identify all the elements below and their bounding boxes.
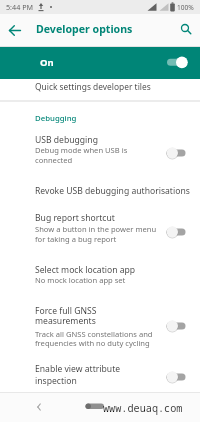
staticText: Force full GNSS measurements xyxy=(35,305,97,327)
staticText: Revoke USB debugging authorisations xyxy=(35,185,190,197)
staticText: Developer options xyxy=(36,22,133,36)
staticText: www.deuaq.com xyxy=(103,401,183,415)
staticText: Select mock location app xyxy=(35,264,136,276)
staticText: Bug report shortcut xyxy=(35,212,115,224)
staticText: Debugging xyxy=(35,113,77,124)
staticText: Debug mode when USB is connected xyxy=(35,145,128,165)
staticText: Enable view attribute inspection xyxy=(35,363,121,386)
button[interactable] xyxy=(0,47,200,79)
button[interactable] xyxy=(0,129,200,168)
staticText: On xyxy=(40,56,54,69)
staticText: 100% xyxy=(177,3,194,12)
button[interactable] xyxy=(0,298,200,352)
staticText: No mock location app set xyxy=(35,275,126,285)
button[interactable] xyxy=(0,208,200,250)
staticText: Track all GNSS constellations and freque… xyxy=(35,329,153,348)
staticText: 5:44 PM xyxy=(6,2,33,12)
button[interactable] xyxy=(30,398,48,416)
staticText: Quick settings developer tiles xyxy=(35,81,151,92)
button[interactable] xyxy=(0,176,200,204)
button[interactable] xyxy=(0,358,200,392)
staticText: Show a button in the power menu for taki… xyxy=(35,224,157,244)
staticText: USB debugging xyxy=(35,134,98,146)
button[interactable] xyxy=(176,19,197,40)
button[interactable] xyxy=(5,20,26,41)
button[interactable] xyxy=(0,79,200,100)
button[interactable] xyxy=(0,255,200,291)
